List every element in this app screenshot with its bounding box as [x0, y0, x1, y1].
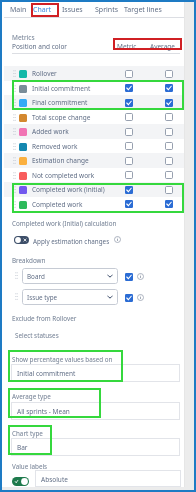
other: Info	[137, 273, 144, 280]
button[interactable]: Unchecked	[125, 171, 133, 179]
button[interactable]: Total scope change	[4, 110, 184, 125]
button[interactable]: Checked	[125, 99, 133, 107]
button[interactable]: Unchecked	[165, 70, 173, 78]
button[interactable]: Initial commitment	[4, 81, 184, 96]
button[interactable]: Unchecked	[125, 70, 133, 78]
button[interactable]: Not completed work	[4, 168, 184, 183]
button[interactable]: Toggle	[14, 236, 29, 244]
button[interactable]: Toggle	[12, 477, 29, 486]
button[interactable]: Checked	[125, 294, 133, 302]
button[interactable]: Checked	[125, 186, 133, 194]
button[interactable]: Chart	[33, 5, 52, 15]
staticText: Final commitment	[32, 98, 88, 107]
button[interactable]: Checked	[165, 200, 173, 208]
button[interactable]: Removed work	[4, 139, 184, 154]
button[interactable]: Unchecked	[165, 157, 173, 165]
staticText: Rollover	[32, 69, 57, 78]
staticText: Estimation change	[32, 156, 89, 165]
button[interactable]: Final commitment	[4, 95, 184, 110]
button[interactable]: Select statuses	[11, 329, 180, 341]
button[interactable]: Unchecked	[165, 128, 173, 136]
staticText: Completed work (initial)	[32, 185, 105, 194]
button[interactable]: Completed work	[4, 197, 184, 212]
button[interactable]: Bar	[11, 438, 180, 456]
staticText: Completed work (Initial) calculation	[12, 219, 117, 228]
staticText: All sprints - Mean	[17, 407, 70, 416]
button[interactable]: Checked	[165, 99, 173, 107]
button[interactable]: Issues	[62, 5, 83, 15]
staticText: Show percentage values based on	[12, 355, 113, 364]
staticText: Value labels	[12, 462, 48, 471]
button[interactable]: Unchecked	[125, 113, 133, 121]
button[interactable]: Estimation change	[4, 153, 184, 168]
button[interactable]: Sprints	[95, 5, 119, 15]
button[interactable]: Added work	[4, 124, 184, 139]
staticText: Initial commitment	[32, 84, 91, 93]
button[interactable]: Unchecked	[125, 128, 133, 136]
staticText: Average	[150, 42, 175, 51]
button[interactable]: All sprints - Mean	[11, 402, 180, 420]
button[interactable]: Main	[10, 5, 27, 15]
staticText: Metric	[117, 42, 137, 51]
staticText: Not completed work	[32, 171, 95, 180]
staticText: Metrics	[12, 33, 35, 42]
staticText: Issue type	[27, 293, 58, 302]
button[interactable]: Checked	[125, 200, 133, 208]
button[interactable]: Absolute	[41, 475, 68, 484]
staticText: Chart type	[12, 429, 43, 438]
button[interactable]: Unchecked	[165, 113, 173, 121]
button[interactable]: Unchecked	[165, 186, 173, 194]
button[interactable]: Unchecked	[165, 142, 173, 150]
button[interactable]: Checked	[125, 84, 133, 92]
button[interactable]: Checked	[165, 84, 173, 92]
staticText: Removed work	[32, 142, 78, 151]
button[interactable]: Checked	[125, 273, 133, 281]
button[interactable]: Completed work (initial)	[4, 182, 184, 197]
staticText: Board	[27, 272, 45, 281]
staticText: Total scope change	[32, 113, 91, 122]
button[interactable]: Unchecked	[125, 142, 133, 150]
button[interactable]: Apply estimation changes	[33, 237, 110, 246]
staticText: Initial commitment	[17, 369, 76, 378]
button[interactable]: Unchecked	[125, 157, 133, 165]
button[interactable]: Issue type	[22, 289, 118, 305]
staticText: Average type	[12, 392, 51, 401]
button[interactable]: Board	[22, 268, 118, 284]
staticText: Breakdown	[12, 256, 46, 265]
other: Info	[137, 294, 144, 301]
button[interactable]: Target lines	[124, 5, 162, 15]
other: Info	[114, 236, 121, 243]
staticText: Added work	[32, 127, 69, 136]
button[interactable]: Unchecked	[165, 171, 173, 179]
staticText: Bar	[17, 443, 28, 452]
staticText: Completed work	[32, 200, 83, 209]
button[interactable]: Initial commitment	[11, 364, 180, 382]
staticText: Select statuses	[15, 331, 59, 340]
button[interactable]: Rollover	[4, 66, 184, 81]
staticText: Position and color	[12, 42, 68, 51]
staticText: Exclude from Rollover	[12, 314, 77, 323]
